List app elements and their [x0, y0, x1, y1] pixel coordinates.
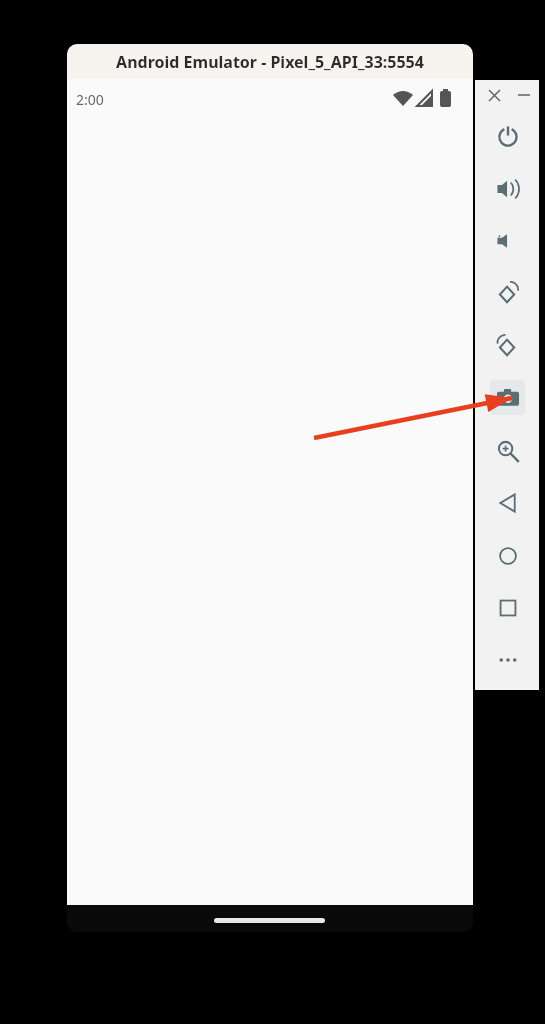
button[interactable]: Power	[490, 118, 525, 153]
button[interactable]: Home gesture bar	[214, 918, 325, 923]
button[interactable]: Take screenshot	[490, 380, 525, 415]
button[interactable]: Close	[481, 82, 507, 108]
button[interactable]: Volume down	[490, 223, 525, 258]
staticText: Android Emulator - Pixel_5_API_33:5554	[116, 51, 424, 73]
button[interactable]: Rotate right	[490, 328, 525, 363]
button[interactable]: Android Emulator - Pixel_5_API_33:5554	[67, 44, 473, 79]
button[interactable]: Home	[490, 538, 525, 573]
button[interactable]: Rotate left	[490, 275, 525, 310]
button[interactable]: Zoom	[490, 433, 525, 468]
button[interactable]: More	[490, 642, 525, 677]
button[interactable]: Overview	[490, 590, 525, 625]
button[interactable]: Volume up	[490, 171, 525, 206]
staticText: 2:00	[76, 90, 104, 109]
button[interactable]: Back	[490, 485, 525, 520]
button[interactable]: Minimize	[511, 82, 537, 108]
